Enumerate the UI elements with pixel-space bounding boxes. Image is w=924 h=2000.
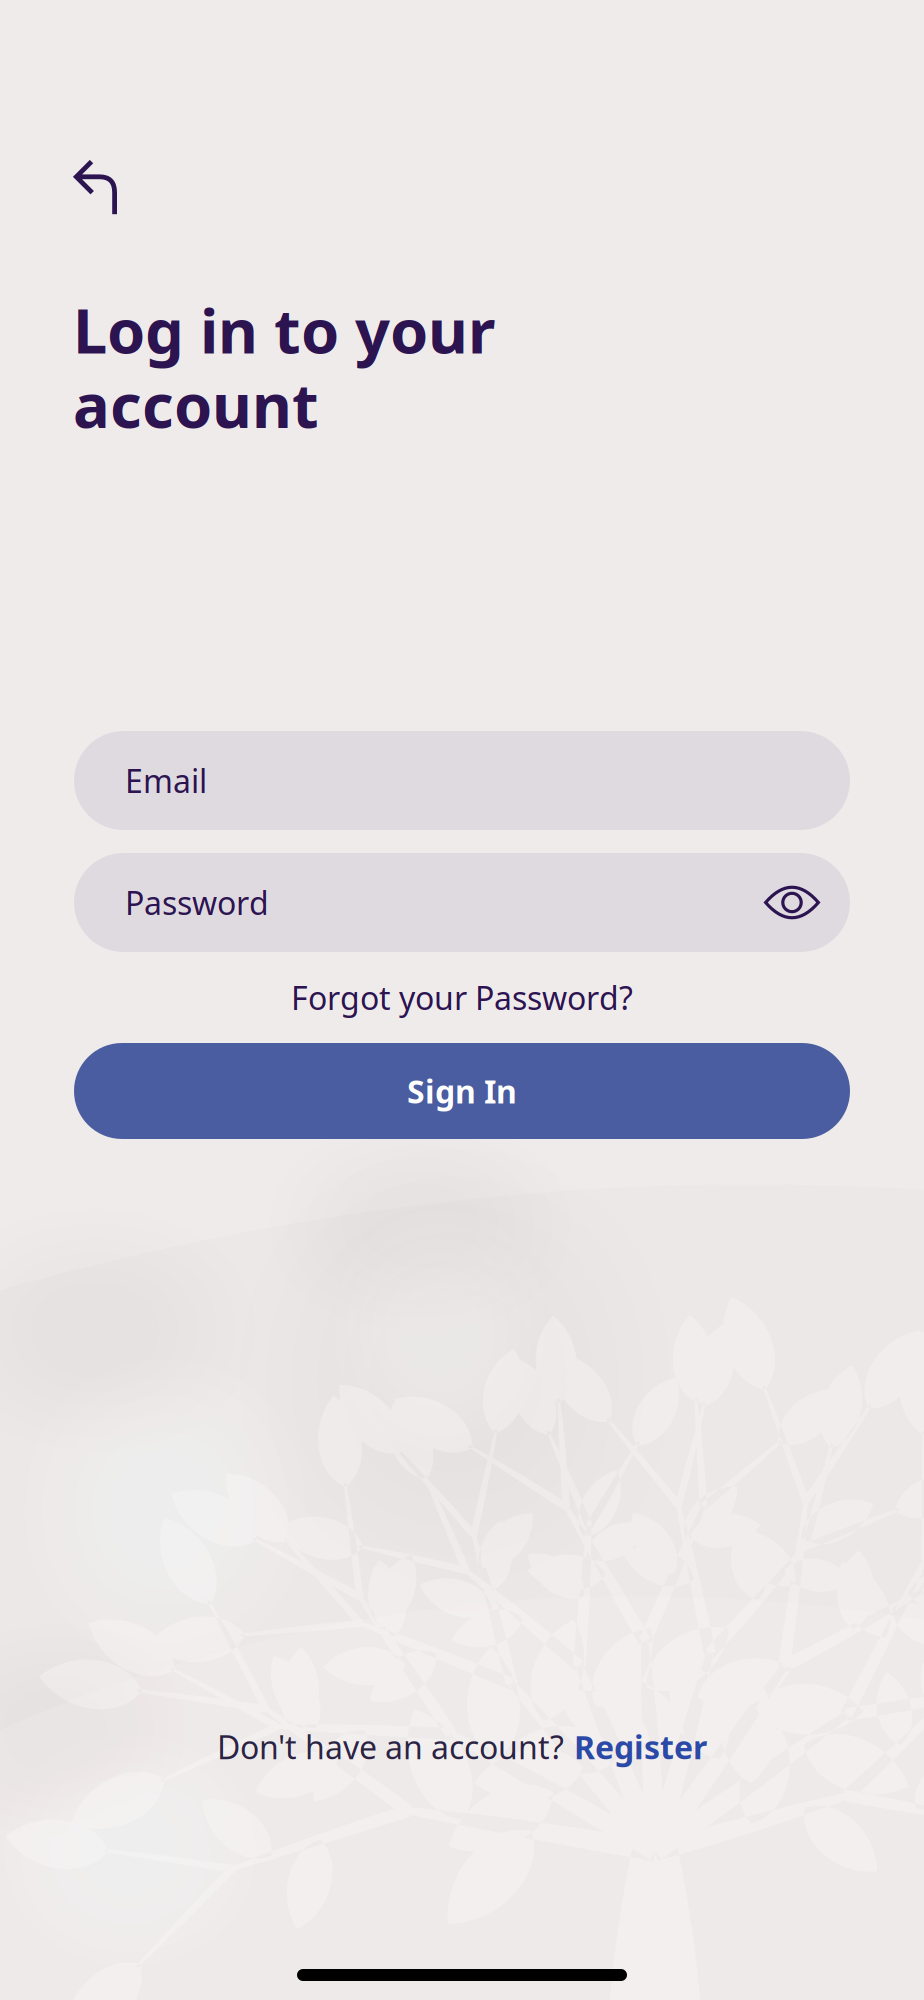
button[interactable]: Forgot your Password? bbox=[74, 952, 850, 1043]
button[interactable]: Back bbox=[0, 0, 154, 289]
staticText: Sign In bbox=[407, 1070, 517, 1112]
staticText: account bbox=[73, 363, 319, 445]
button[interactable]: Email bbox=[74, 731, 850, 830]
staticText: Password bbox=[125, 881, 269, 924]
staticText: Log in to your bbox=[73, 289, 495, 370]
button[interactable]: Show password bbox=[734, 853, 850, 952]
button[interactable]: Don't have an account? bbox=[217, 1709, 707, 1784]
staticText: Register bbox=[574, 1725, 707, 1768]
staticText: Forgot your Password? bbox=[291, 976, 633, 1019]
staticText: Don't have an account? bbox=[217, 1725, 564, 1768]
button[interactable]: Password bbox=[74, 853, 850, 952]
staticText: Email bbox=[125, 759, 207, 802]
button[interactable]: Sign In bbox=[74, 1043, 850, 1139]
